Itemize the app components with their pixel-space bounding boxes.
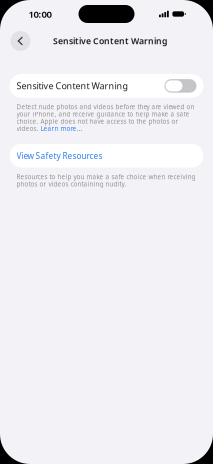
button[interactable]: Back bbox=[8, 29, 32, 53]
button[interactable]: View Safety Resources bbox=[9, 144, 203, 168]
staticText: Sensitive Content Warning bbox=[16, 80, 127, 92]
staticText: Detect nude photos and videos before the… bbox=[17, 103, 195, 132]
button[interactable]: Sensitive Content Warning bbox=[9, 74, 203, 98]
staticText: 10:00 bbox=[28, 8, 51, 20]
staticText: Sensitive Content Warning bbox=[53, 35, 167, 47]
staticText: Resources to help you make a safe choice… bbox=[17, 173, 196, 188]
staticText: View Safety Resources bbox=[16, 150, 102, 161]
